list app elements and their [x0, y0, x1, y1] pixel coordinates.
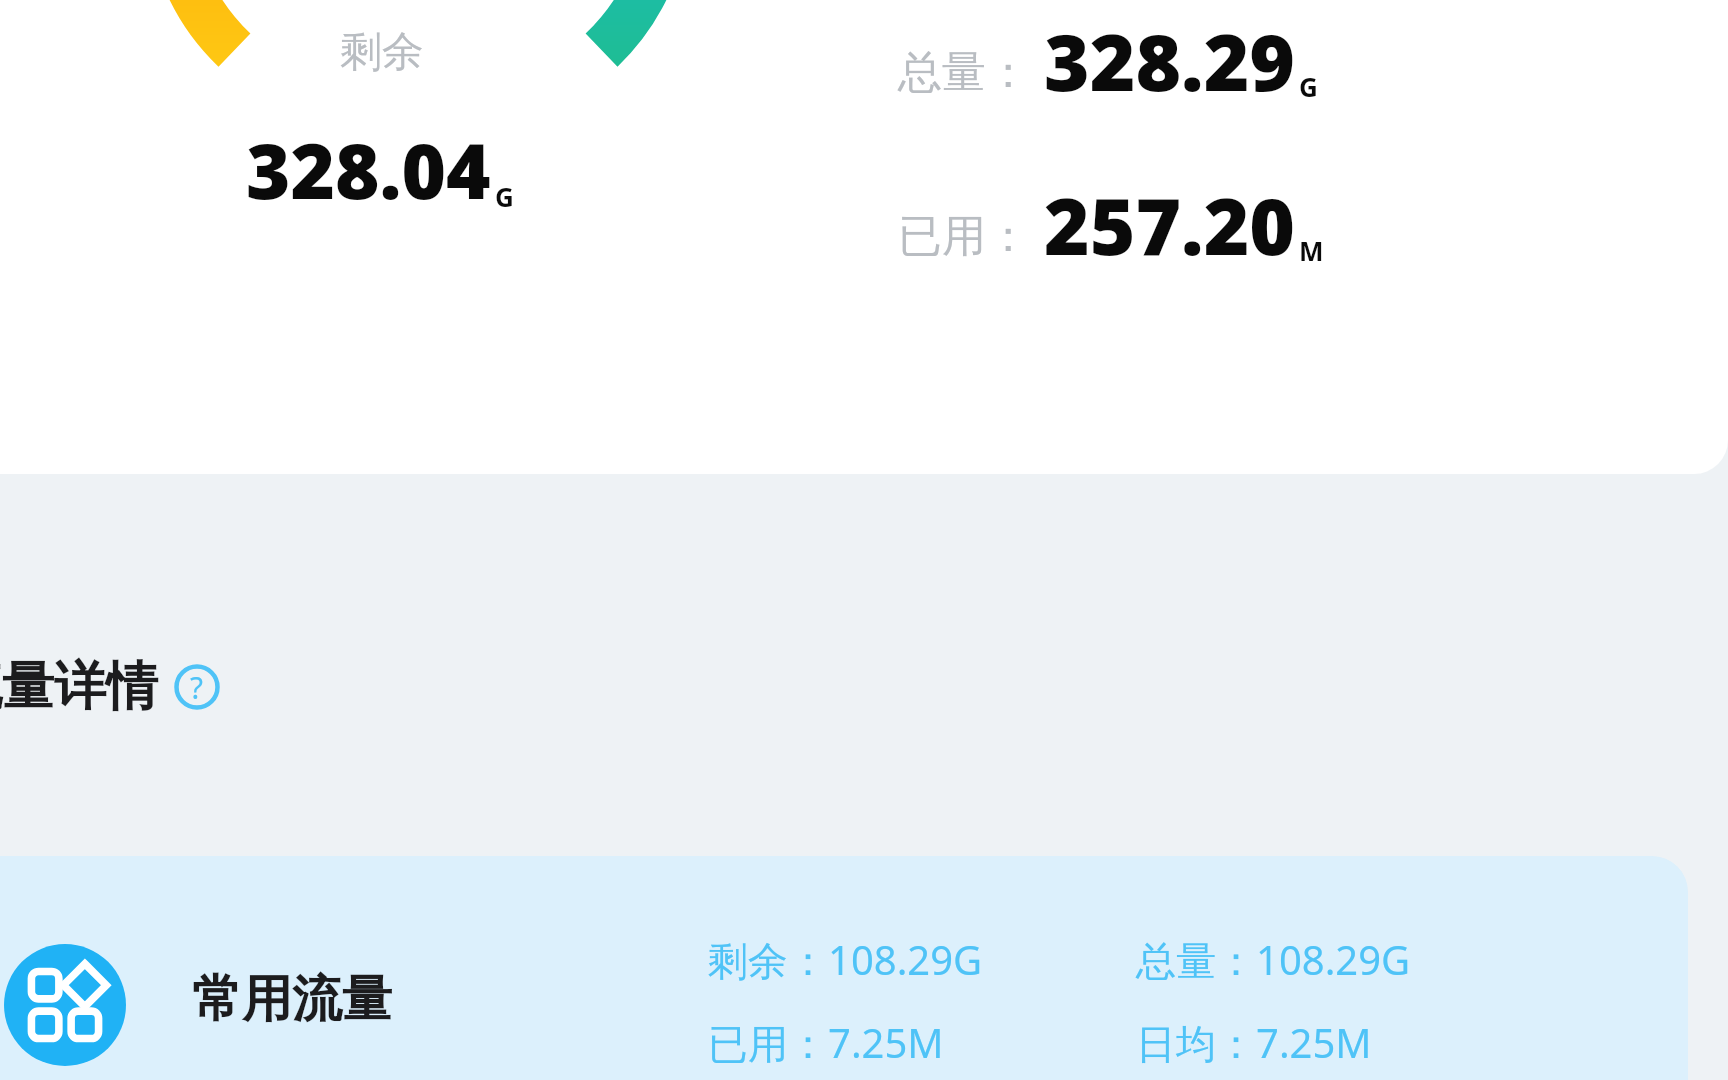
staticText: G [495, 179, 514, 214]
staticText: ? [190, 667, 204, 708]
staticText: 328.04 [246, 118, 491, 222]
staticText: 剩余 [340, 26, 424, 79]
staticText: 常用流量 [192, 968, 392, 1031]
button[interactable]: 常用流量 [0, 856, 1688, 1080]
staticText: 日均：7.25M [1136, 1015, 1372, 1070]
staticText: 已用：7.25M [708, 1015, 944, 1070]
staticText: 总量： [898, 45, 1030, 100]
staticText: 流量详情 [0, 654, 158, 720]
other: 帮助 [174, 664, 220, 710]
staticText: G [1299, 69, 1318, 104]
button[interactable]: 流量详情 [0, 648, 228, 726]
staticText: M [1299, 233, 1324, 268]
staticText: 257.20 [1044, 172, 1296, 278]
staticText: 剩余：108.29G [708, 932, 983, 987]
staticText: 总量：108.29G [1136, 932, 1411, 987]
staticText: 已用： [898, 209, 1030, 264]
staticText: 328.29 [1044, 8, 1296, 114]
